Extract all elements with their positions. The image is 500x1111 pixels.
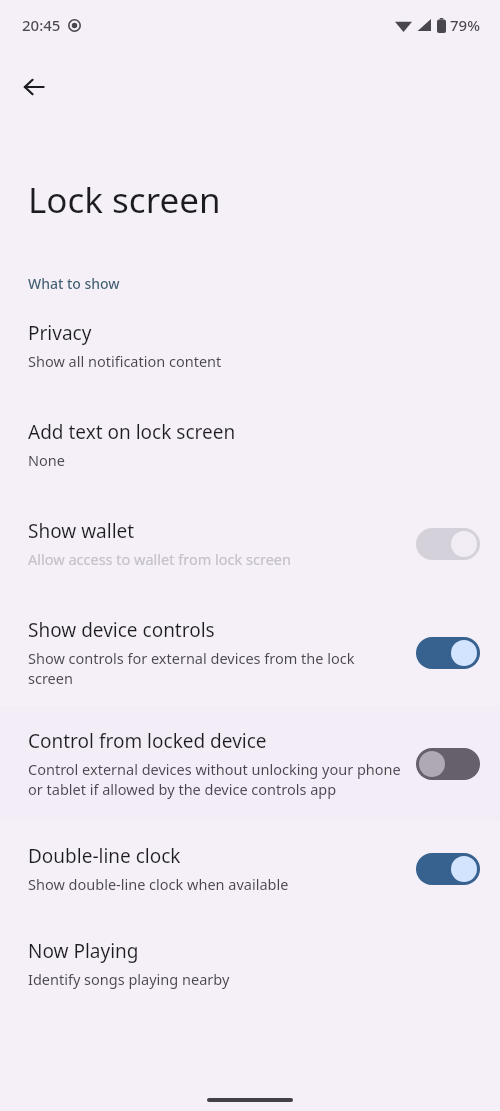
button[interactable]: Back [10,63,58,111]
button[interactable]: Toggle [416,853,480,885]
button[interactable]: Show wallet [0,494,500,593]
button[interactable]: Toggle [416,528,480,560]
staticText: Show wallet [28,518,135,544]
staticText: Show device controls [28,617,215,643]
button[interactable]: Double-line clock [0,821,500,916]
staticText: Control from locked device [28,728,267,754]
staticText: Add text on lock screen [28,419,236,445]
staticText: Lock screen [28,176,221,224]
staticText: 20:45 [22,15,61,35]
button[interactable]: Privacy [0,320,500,395]
staticText: Double-line clock [28,843,181,869]
button[interactable]: Show device controls [0,593,500,706]
staticText: 79% [450,15,480,35]
button[interactable]: Now Playing [0,916,500,1013]
staticText: Privacy [28,320,92,346]
button[interactable]: Toggle [416,748,480,780]
staticText: Show controls for external devices from … [28,648,402,688]
staticText: Control external devices without unlocki… [28,759,402,799]
staticText: Now Playing [28,938,139,964]
button[interactable]: Add text on lock screen [0,395,500,494]
button[interactable]: Control from locked device [0,706,500,821]
button[interactable]: Toggle [416,637,480,669]
staticText: None [28,450,65,470]
staticText: Show double-line clock when available [28,874,289,894]
staticText: Identify songs playing nearby [28,969,230,989]
staticText: Allow access to wallet from lock screen [28,549,291,569]
staticText: Show all notification content [28,351,222,371]
staticText: What to show [28,274,120,293]
